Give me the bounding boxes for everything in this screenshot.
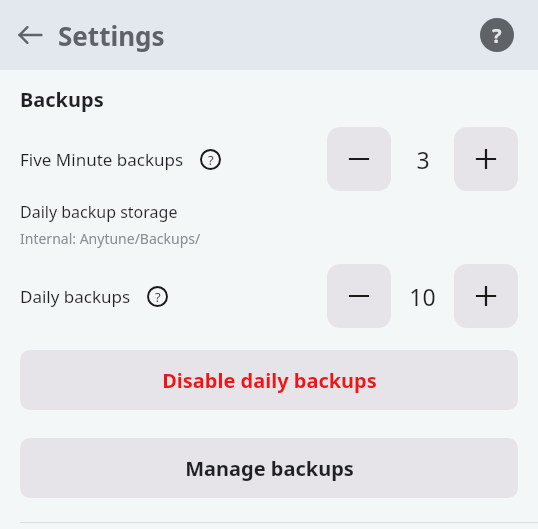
button[interactable]: Decrease Daily backups <box>327 264 391 328</box>
button[interactable]: Decrease Five Minute backups <box>327 127 391 191</box>
button[interactable]: Help <box>478 16 516 54</box>
staticText: Daily backup storage <box>20 201 178 223</box>
button[interactable]: Increase Five Minute backups <box>454 127 518 191</box>
staticText: Settings <box>58 18 165 53</box>
staticText: Daily backups <box>20 285 131 308</box>
staticText: Five Minute backups <box>20 148 184 171</box>
staticText: Internal: Anytune/Backups/ <box>20 229 201 248</box>
staticText: 10 <box>409 281 436 312</box>
staticText: 3 <box>416 144 430 175</box>
button[interactable]: Disable daily backups <box>20 350 518 410</box>
staticText: ? <box>155 288 161 306</box>
button[interactable]: Help about Daily backups <box>143 282 171 310</box>
button[interactable]: Manage backups <box>20 438 518 498</box>
staticText: Manage backups <box>185 455 354 482</box>
button[interactable]: Back <box>10 15 50 55</box>
staticText: Backups <box>20 86 104 113</box>
button[interactable]: Help about Five Minute backups <box>196 145 224 173</box>
staticText: ? <box>492 22 502 49</box>
button[interactable]: Increase Daily backups <box>454 264 518 328</box>
staticText: Disable daily backups <box>162 367 377 394</box>
staticText: ? <box>208 151 214 169</box>
